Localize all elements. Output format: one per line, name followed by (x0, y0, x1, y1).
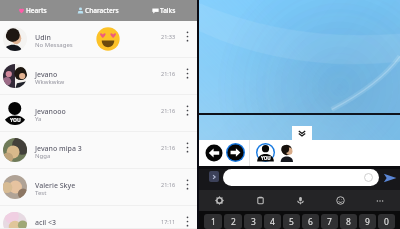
staticText: Characters (85, 6, 119, 15)
staticText: 3 (251, 216, 256, 228)
staticText: YOU (10, 117, 21, 124)
button[interactable]: More options (181, 30, 193, 42)
staticText: Valerie Skye (35, 181, 76, 191)
button[interactable]: More options (181, 104, 193, 116)
staticText: Talks (160, 6, 176, 15)
button[interactable]: 4 (264, 214, 281, 229)
button[interactable]: Previous (204, 143, 224, 163)
staticText: 8 (346, 216, 351, 228)
staticText: Test (35, 189, 47, 197)
staticText: 2 (231, 216, 236, 228)
staticText: 21:33 (161, 33, 176, 40)
button[interactable]: More options (181, 141, 193, 153)
button[interactable]: 8 (340, 214, 357, 229)
button[interactable]: Scroll to bottom (292, 126, 312, 140)
button[interactable]: Character (280, 144, 293, 162)
button[interactable]: Settings (199, 190, 240, 211)
staticText: Ngga (35, 152, 51, 160)
button[interactable]: acil <3 (0, 206, 197, 229)
staticText: 7 (327, 216, 332, 228)
button[interactable]: Talks (131, 0, 197, 21)
button[interactable]: Jevano (0, 58, 197, 95)
button[interactable]: You (256, 143, 275, 162)
staticText: Hearts (26, 6, 47, 15)
staticText: YOU (261, 155, 271, 161)
button[interactable]: Expand toolbar (209, 171, 219, 182)
button[interactable]: Send (382, 170, 397, 185)
button[interactable]: 0 (378, 214, 395, 229)
staticText: 21:16 (161, 181, 176, 188)
staticText: 0 (384, 216, 389, 228)
staticText: 21:16 (161, 70, 176, 77)
button[interactable]: More options (181, 67, 193, 79)
staticText: Jevano mipa 3 (35, 144, 82, 154)
staticText: Udin (35, 33, 51, 43)
button[interactable]: Characters (65, 0, 131, 21)
staticText: 6 (308, 216, 313, 228)
staticText: 21:16 (161, 144, 176, 151)
button[interactable]: More options (181, 215, 193, 227)
button[interactable]: 3 (244, 214, 262, 229)
button[interactable]: Udin (0, 21, 197, 58)
staticText: Jevano (35, 70, 58, 80)
button[interactable]: 5 (283, 214, 300, 229)
button[interactable]: Message input (223, 169, 379, 186)
staticText: 4 (270, 216, 275, 228)
staticText: Jevanooo (35, 107, 66, 117)
button[interactable]: 1 (204, 214, 222, 229)
button[interactable]: Hearts (0, 0, 65, 21)
staticText: 17:11 (161, 218, 176, 225)
button[interactable]: 7 (321, 214, 338, 229)
button[interactable]: Next (226, 143, 245, 162)
staticText: 5 (289, 216, 294, 228)
button[interactable]: Voice input (280, 190, 320, 211)
staticText: 9 (365, 216, 370, 228)
button[interactable]: Clipboard (240, 190, 280, 211)
button[interactable]: More (360, 190, 400, 211)
staticText: 21:16 (161, 107, 176, 114)
button[interactable]: 6 (302, 214, 319, 229)
button[interactable]: 9 (359, 214, 376, 229)
staticText: 1 (211, 216, 216, 228)
button[interactable]: Emoji (320, 190, 360, 211)
button[interactable]: Jevano mipa 3 (0, 132, 197, 169)
staticText: acil <3 (35, 218, 57, 228)
staticText: No Messages (35, 41, 73, 49)
button[interactable]: YOU (0, 95, 197, 132)
button[interactable]: 2 (224, 214, 242, 229)
staticText: Wkwkwkw (35, 78, 65, 86)
button[interactable]: Valerie Skye (0, 169, 197, 206)
button[interactable]: More options (181, 178, 193, 190)
staticText: Ya (35, 115, 42, 123)
